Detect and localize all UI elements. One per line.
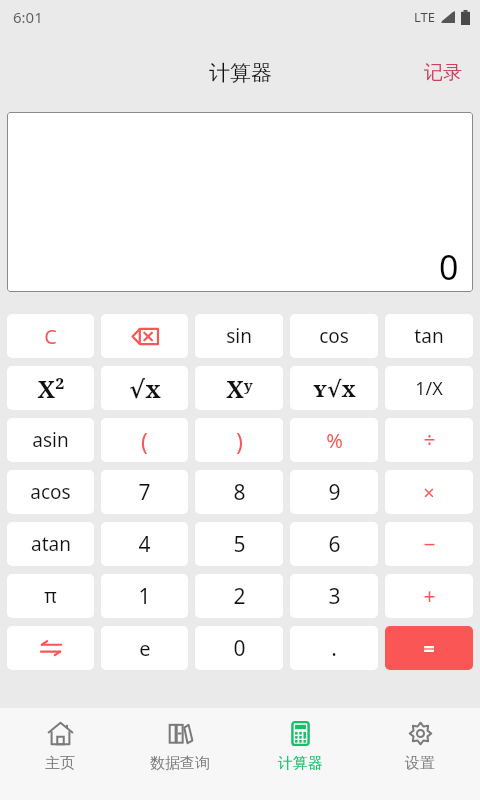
button[interactable]: 0: [195, 626, 283, 670]
button[interactable]: 计算器: [240, 708, 360, 800]
button[interactable]: ): [195, 418, 283, 462]
staticText: acos: [30, 479, 71, 505]
staticText: atan: [31, 531, 71, 557]
staticText: ʏ√x: [313, 373, 356, 403]
button[interactable]: 数据查询: [120, 708, 240, 800]
button[interactable]: ʏ√x: [290, 366, 378, 410]
staticText: 5: [233, 530, 246, 559]
staticText: Xʸ: [226, 372, 253, 405]
button[interactable]: e: [101, 626, 188, 670]
button[interactable]: 9: [290, 470, 378, 514]
staticText: +: [423, 582, 436, 611]
button[interactable]: atan: [7, 522, 94, 566]
button[interactable]: ×: [385, 470, 473, 514]
button[interactable]: 1: [101, 574, 188, 618]
staticText: LTE: [414, 8, 436, 26]
button[interactable]: 5: [195, 522, 283, 566]
button[interactable]: 主页: [0, 708, 120, 800]
staticText: 记录: [424, 61, 462, 85]
button[interactable]: .: [290, 626, 378, 670]
staticText: X²: [37, 372, 65, 405]
staticText: 数据查询: [150, 754, 210, 773]
button[interactable]: 2: [195, 574, 283, 618]
staticText: 0: [233, 634, 246, 663]
staticText: e: [139, 635, 151, 662]
staticText: =: [423, 635, 435, 662]
button[interactable]: 4: [101, 522, 188, 566]
button[interactable]: ÷: [385, 418, 473, 462]
staticText: 计算器: [278, 754, 323, 773]
staticText: 主页: [45, 754, 75, 773]
button[interactable]: cos: [290, 314, 378, 358]
staticText: tan: [414, 323, 444, 349]
button[interactable]: Delete: [101, 314, 188, 358]
staticText: √x: [129, 372, 161, 405]
button[interactable]: −: [385, 522, 473, 566]
button[interactable]: √x: [101, 366, 188, 410]
button[interactable]: 1/X: [385, 366, 473, 410]
staticText: (: [141, 425, 148, 456]
staticText: .: [331, 634, 337, 663]
staticText: −: [423, 530, 436, 559]
staticText: 9: [328, 478, 341, 507]
button[interactable]: Xʸ: [195, 366, 283, 410]
staticText: cos: [319, 323, 349, 349]
staticText: 4: [138, 530, 151, 559]
staticText: sin: [226, 323, 252, 349]
button[interactable]: sin: [195, 314, 283, 358]
button[interactable]: π: [7, 574, 94, 618]
staticText: 1: [138, 582, 151, 611]
button[interactable]: (: [101, 418, 188, 462]
button[interactable]: 设置: [360, 708, 480, 800]
staticText: ): [236, 425, 243, 456]
button[interactable]: acos: [7, 470, 94, 514]
staticText: ÷: [423, 426, 436, 455]
button[interactable]: 记录: [406, 51, 480, 95]
button[interactable]: 7: [101, 470, 188, 514]
button[interactable]: 3: [290, 574, 378, 618]
staticText: 6:01: [13, 7, 43, 27]
button[interactable]: 6: [290, 522, 378, 566]
staticText: 计算器: [209, 60, 272, 86]
button[interactable]: 8: [195, 470, 283, 514]
staticText: 1/X: [415, 376, 443, 401]
staticText: 设置: [405, 754, 435, 773]
staticText: 7: [138, 478, 151, 507]
button[interactable]: C: [7, 314, 94, 358]
staticText: %: [326, 427, 343, 454]
staticText: C: [44, 323, 57, 350]
staticText: 0: [439, 244, 459, 290]
staticText: 6: [328, 530, 341, 559]
button[interactable]: %: [290, 418, 378, 462]
button[interactable]: Swap: [7, 626, 94, 670]
button[interactable]: +: [385, 574, 473, 618]
staticText: 8: [233, 478, 246, 507]
button[interactable]: =: [385, 626, 473, 670]
staticText: π: [44, 583, 57, 609]
staticText: 3: [328, 582, 341, 611]
staticText: ×: [423, 479, 435, 506]
button[interactable]: tan: [385, 314, 473, 358]
button[interactable]: X²: [7, 366, 94, 410]
button[interactable]: asin: [7, 418, 94, 462]
staticText: asin: [32, 427, 69, 453]
staticText: 2: [233, 582, 246, 611]
